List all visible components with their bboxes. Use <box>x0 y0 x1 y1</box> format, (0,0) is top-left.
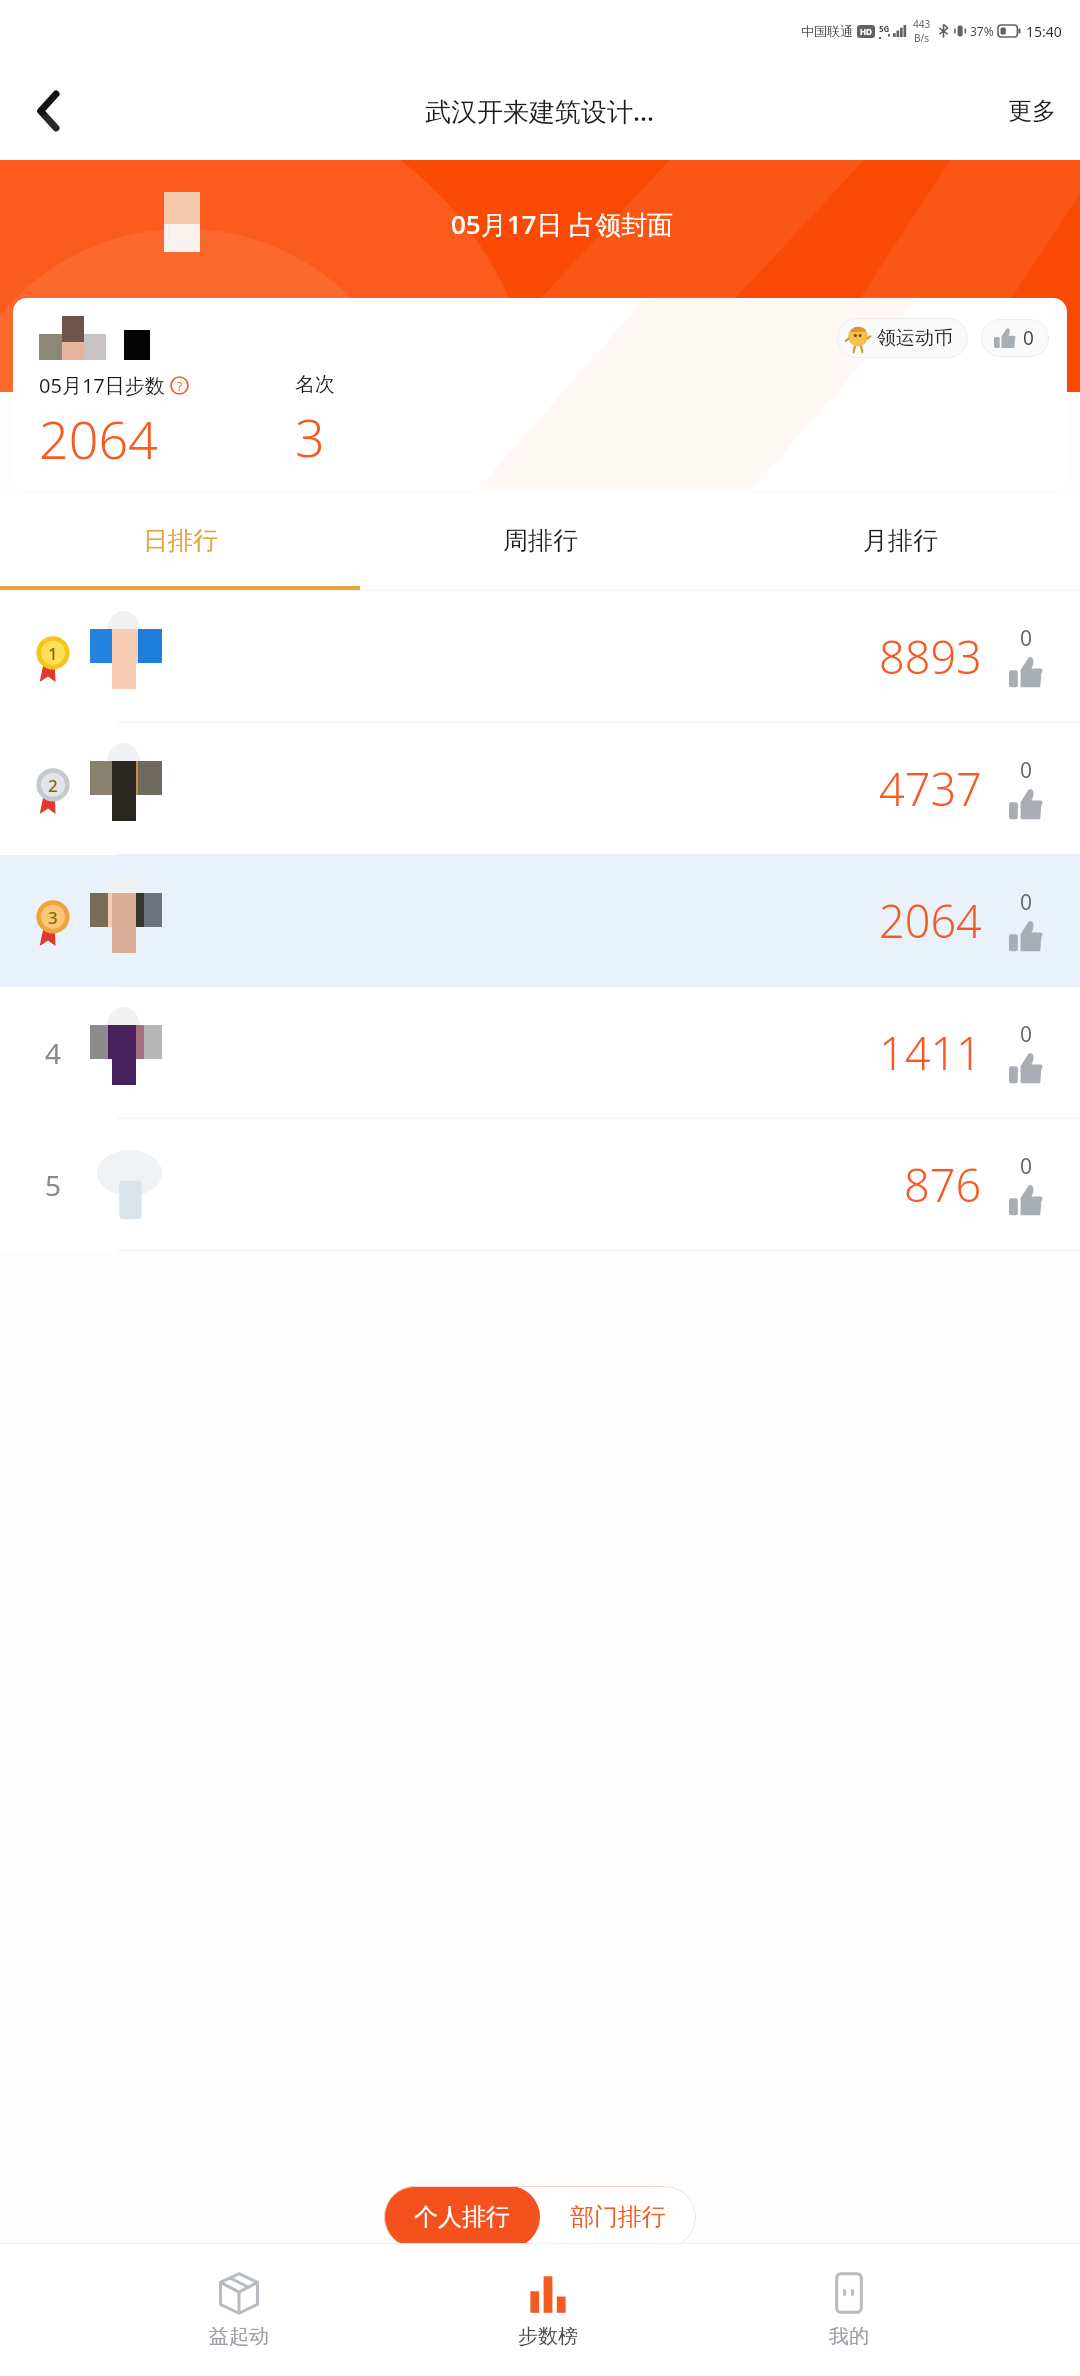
staticText: 37% <box>970 23 994 39</box>
staticText: 0 <box>1020 1152 1033 1181</box>
button[interactable]: 0 <box>981 319 1049 357</box>
staticText: 876 <box>904 1154 982 1215</box>
staticText: 日排行 <box>143 525 218 556</box>
staticText: 名次 <box>295 372 335 397</box>
button[interactable]: 个人排行 <box>384 2186 540 2248</box>
staticText: 8893 <box>879 626 982 687</box>
staticText: B/s <box>914 31 930 45</box>
staticText: 2064 <box>879 890 982 951</box>
staticText: 3 <box>295 401 325 472</box>
staticText: 领运动币 <box>877 326 953 350</box>
button[interactable]: 05月17日 占领封面 <box>451 206 674 242</box>
staticText: 中国联通 <box>801 23 853 39</box>
staticText: 05月17日步数 <box>39 372 165 399</box>
staticText: 2 <box>48 774 58 797</box>
staticText: 443 <box>913 17 931 31</box>
staticText: 5G <box>879 23 890 34</box>
staticText: 1411 <box>879 1022 982 1083</box>
staticText: 0 <box>1020 1020 1033 1049</box>
staticText: 武汉开来建筑设计… <box>425 93 655 129</box>
staticText: 益起动 <box>209 2324 269 2349</box>
staticText: 4737 <box>879 758 982 819</box>
staticText: 4 <box>45 1034 62 1072</box>
staticText: 15:40 <box>1026 22 1062 41</box>
staticText: HD <box>860 26 872 37</box>
button[interactable]: 1 <box>0 591 1080 723</box>
button[interactable]: 益起动 <box>169 2263 309 2357</box>
button[interactable]: 周排行 <box>360 494 720 586</box>
staticText: 周排行 <box>503 525 578 556</box>
staticText: 我的 <box>829 2324 869 2349</box>
button[interactable]: 2 <box>0 723 1080 855</box>
staticText: ? <box>177 378 183 394</box>
button[interactable]: 部门排行 <box>540 2186 696 2248</box>
staticText: 0 <box>1020 888 1033 917</box>
staticText: 5 <box>45 1166 62 1204</box>
button[interactable]: Back <box>20 82 78 140</box>
button[interactable]: 我的 <box>787 2263 911 2357</box>
staticText: 3 <box>48 906 58 929</box>
staticText: 更多 <box>1008 96 1056 126</box>
button[interactable]: 步数榜 <box>478 2263 618 2357</box>
staticText: 1 <box>48 642 58 665</box>
staticText: 2064 <box>39 403 158 474</box>
button[interactable]: 5 <box>0 1119 1080 1251</box>
staticText: 0 <box>1020 624 1033 653</box>
staticText: 0 <box>1020 756 1033 785</box>
button[interactable]: 更多 <box>984 82 1080 140</box>
staticText: 月排行 <box>863 525 938 556</box>
button[interactable]: Help <box>170 376 189 395</box>
staticText: 部门排行 <box>570 2202 666 2232</box>
button[interactable]: 日排行 <box>0 494 360 586</box>
staticText: 0 <box>1023 325 1034 351</box>
button[interactable]: 3 <box>0 855 1080 987</box>
staticText: 步数榜 <box>518 2324 578 2349</box>
button[interactable]: 领运动币 <box>837 318 968 358</box>
button[interactable]: 4 <box>0 987 1080 1119</box>
button[interactable]: 月排行 <box>720 494 1080 586</box>
staticText: 个人排行 <box>414 2202 510 2232</box>
